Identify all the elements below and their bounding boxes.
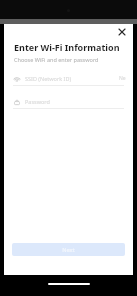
button[interactable]: Password	[4, 95, 133, 108]
staticText: SSID (Network ID)	[25, 75, 72, 82]
staticText: Choose WiFi and enter password	[14, 56, 99, 63]
staticText: Password	[25, 98, 50, 105]
staticText: Ne	[119, 75, 126, 82]
staticText: Next	[62, 246, 75, 253]
button[interactable]: Close	[116, 26, 128, 38]
button[interactable]: SSID (Network ID)	[4, 72, 133, 85]
staticText: Enter Wi-Fi Information	[14, 41, 120, 53]
